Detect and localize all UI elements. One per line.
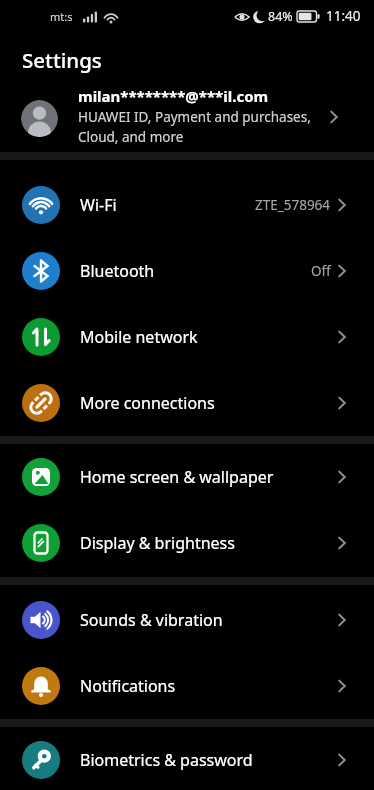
staticText: ZTE_578964	[255, 196, 331, 214]
button[interactable]: Home screen & wallpaper	[0, 444, 374, 510]
staticText: milan********@***il.com	[78, 86, 269, 106]
staticText: mt:s	[50, 9, 73, 24]
staticText: Home screen & wallpaper	[80, 466, 274, 488]
staticText: Display & brightness	[80, 532, 235, 554]
staticText: More connections	[80, 392, 215, 414]
staticText: Sounds & vibration	[80, 609, 223, 631]
button[interactable]: milan********@***il.com	[0, 80, 374, 152]
button[interactable]: Mobile network	[0, 304, 374, 370]
staticText: Off	[311, 262, 331, 280]
staticText: 84%	[268, 8, 293, 25]
button[interactable]: Notifications	[0, 653, 374, 719]
staticText: Biometrics & password	[80, 749, 253, 771]
button[interactable]: More connections	[0, 370, 374, 436]
staticText: 11:40	[326, 7, 361, 25]
staticText: Wi-Fi	[80, 194, 117, 216]
button[interactable]: Bluetooth	[0, 238, 374, 304]
button[interactable]: Wi-Fi	[0, 172, 374, 238]
staticText: Bluetooth	[80, 260, 155, 282]
staticText: Notifications	[80, 675, 176, 697]
button[interactable]: Sounds & vibration	[0, 587, 374, 653]
staticText: Mobile network	[80, 326, 198, 348]
button[interactable]: Display & brightness	[0, 510, 374, 576]
staticText: HUAWEI ID, Payment and purchases, Cloud,…	[78, 108, 311, 146]
staticText: Settings	[22, 46, 102, 74]
button[interactable]: Biometrics & password	[0, 727, 374, 790]
